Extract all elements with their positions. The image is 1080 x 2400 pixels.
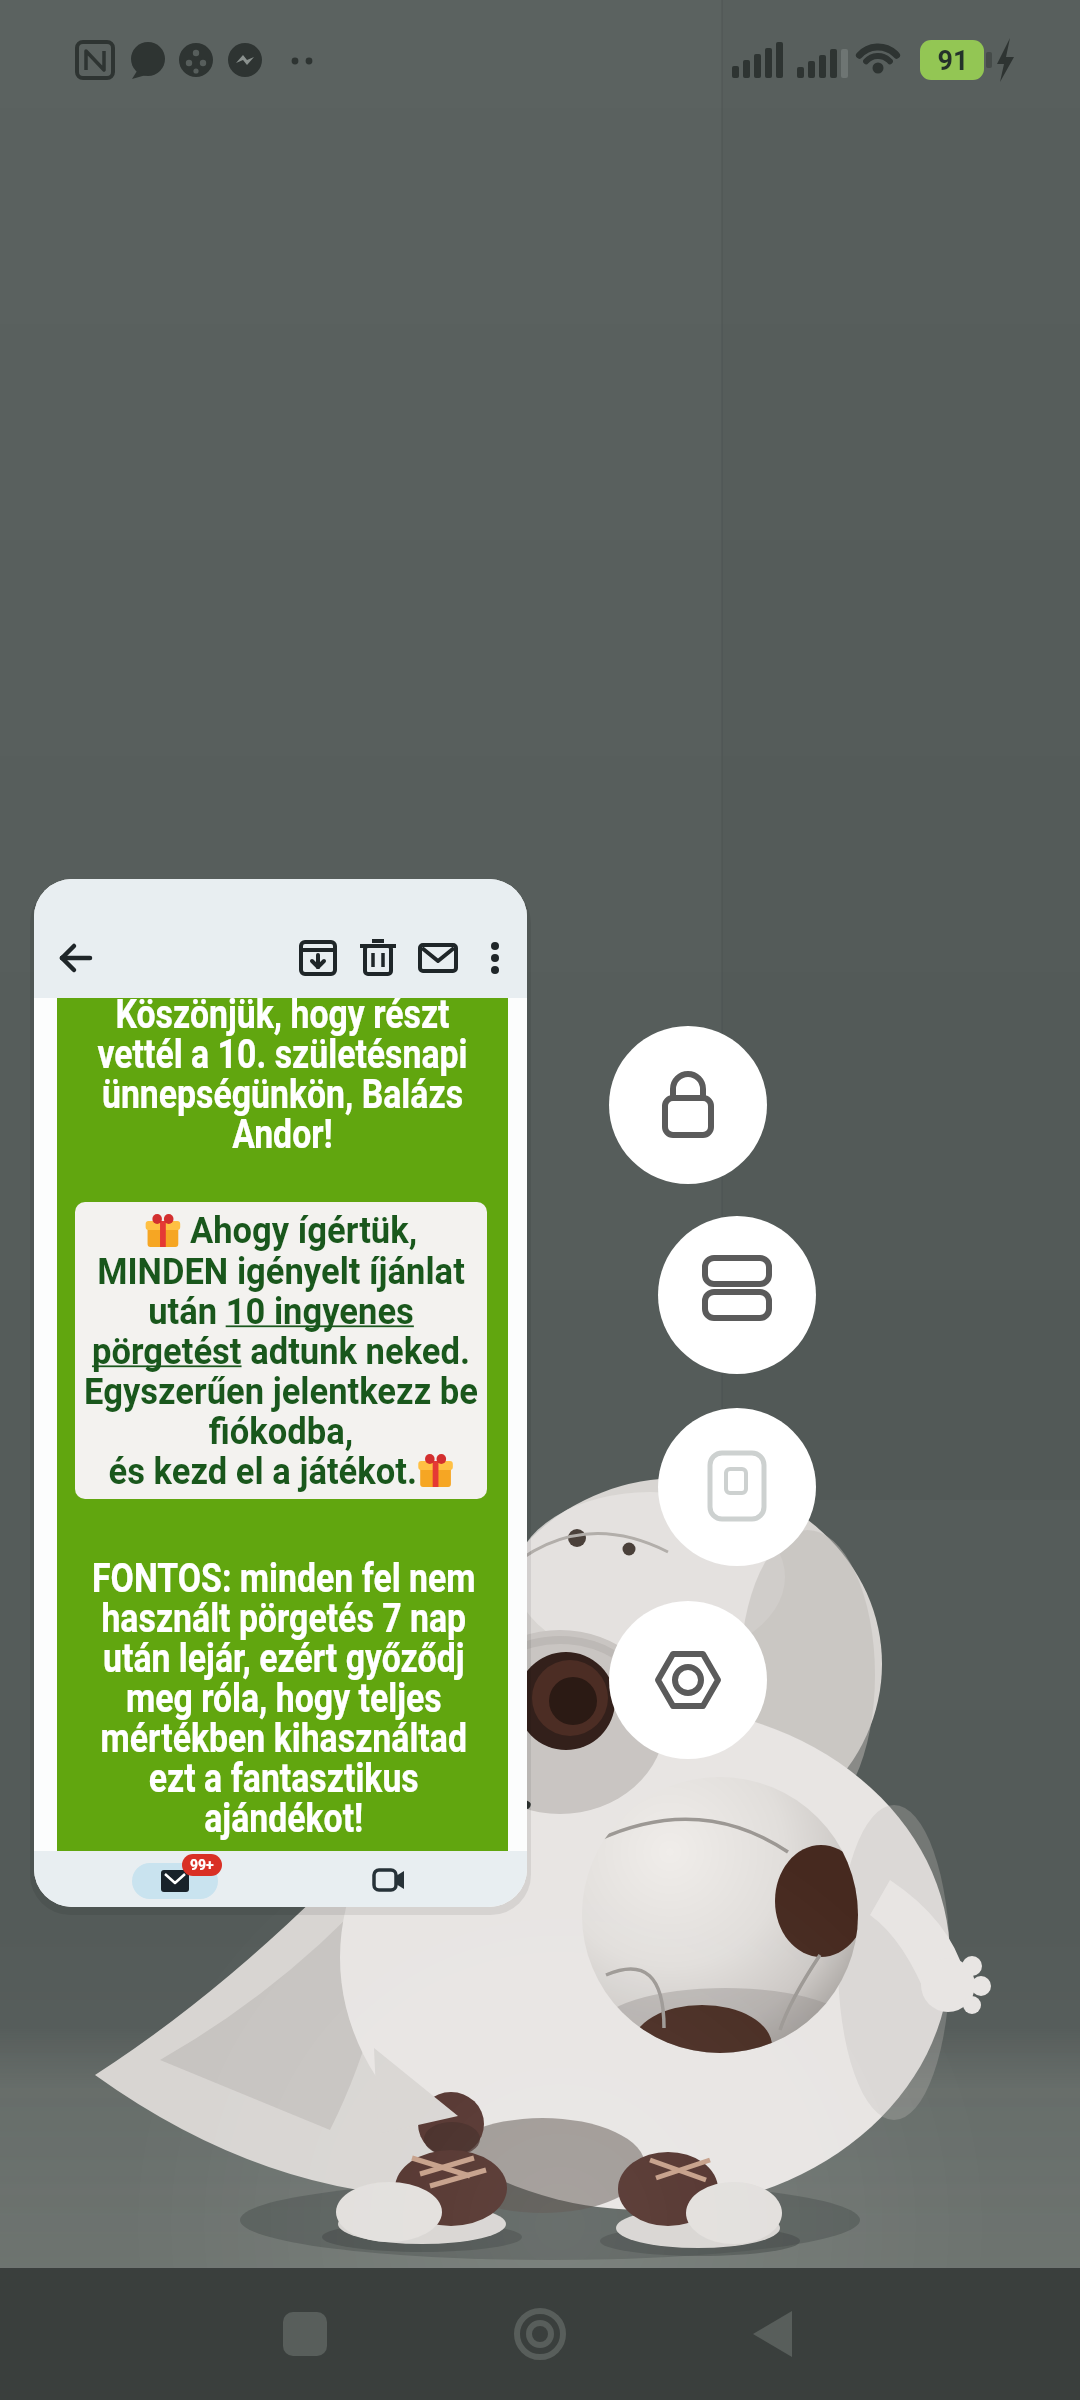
button[interactable] (52, 934, 100, 982)
staticText: � Ahogy ígértük, MINDEN igényelt íjánlat… (83, 1210, 479, 1492)
button[interactable] (490, 2284, 590, 2384)
button[interactable] (609, 1026, 767, 1184)
button[interactable] (366, 1859, 414, 1903)
button[interactable] (471, 934, 519, 982)
button[interactable] (414, 934, 462, 982)
button[interactable] (658, 1216, 816, 1374)
staticText: 99+ (190, 1857, 214, 1873)
button[interactable] (294, 934, 342, 982)
button[interactable] (725, 2284, 825, 2384)
button[interactable] (255, 2284, 355, 2384)
staticText: Köszönjük, hogy részt vettél a 10. szüle… (92, 998, 473, 1157)
button[interactable] (609, 1601, 767, 1759)
button[interactable] (354, 934, 402, 982)
button[interactable] (132, 1863, 218, 1899)
staticText: 91 (929, 45, 977, 77)
button[interactable] (658, 1408, 816, 1566)
staticText: FONTOS: minden fel nem használt pörgetés… (92, 1555, 473, 1841)
